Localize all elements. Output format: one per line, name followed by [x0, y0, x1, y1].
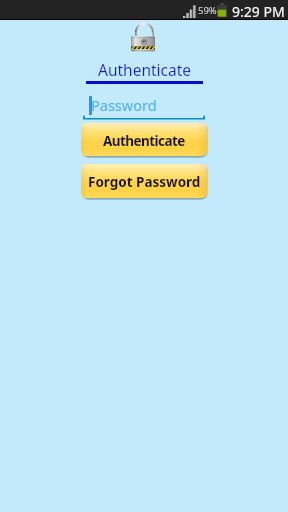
- button[interactable]: Password: [83, 94, 205, 120]
- other: Secure lock: [131, 23, 155, 52]
- staticText: Forgot Password: [88, 173, 201, 191]
- button[interactable]: Forgot Password: [81, 164, 207, 198]
- staticText: Password: [91, 95, 157, 115]
- staticText: Authenticate: [103, 132, 185, 150]
- staticText: Authenticate: [98, 59, 192, 80]
- button[interactable]: Authenticate: [81, 123, 207, 156]
- staticText: 9:29 PM: [232, 2, 285, 21]
- staticText: 59%: [198, 4, 217, 17]
